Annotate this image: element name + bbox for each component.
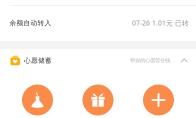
staticText: 余额自动转入 [10, 19, 52, 27]
button[interactable]: 心愿清单 [22, 84, 53, 115]
staticText: 帮你的心愿管住钱 [130, 57, 170, 64]
button[interactable]: 礼物 [82, 84, 113, 115]
button[interactable]: 余额自动转入 [0, 5, 196, 41]
button[interactable]: 新建心愿 [143, 84, 174, 115]
button[interactable]: 心愿储蓄 [0, 49, 196, 72]
staticText: 心愿储蓄 [24, 56, 52, 65]
staticText: 07-26 1.01元 已转 [132, 19, 189, 27]
